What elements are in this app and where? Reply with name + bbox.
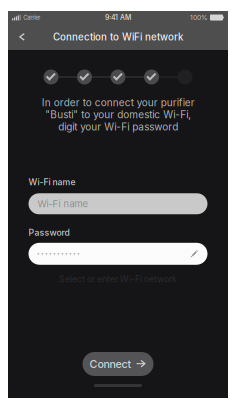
staticText: 100%: [190, 13, 208, 22]
staticText: Password: [28, 227, 69, 238]
button[interactable]: Connect: [82, 352, 153, 376]
staticText: Wi-Fi name: [37, 198, 87, 209]
staticText: Connection to WiFi network: [53, 31, 183, 43]
staticText: Select or enter Wi-Fi network: [59, 274, 177, 284]
staticText: Wi-Fi name: [28, 177, 75, 187]
button[interactable]: Back: [8, 24, 35, 50]
button[interactable]: Select or enter Wi-Fi network: [59, 274, 177, 284]
staticText: Connect: [89, 357, 131, 370]
button[interactable]: Wi-Fi name: [28, 193, 207, 214]
staticText: Carrier: [23, 14, 40, 21]
button[interactable]: [28, 243, 207, 265]
staticText: In order to connect your purifier "Busti…: [41, 96, 194, 133]
staticText: 9:41 AM: [105, 13, 131, 22]
